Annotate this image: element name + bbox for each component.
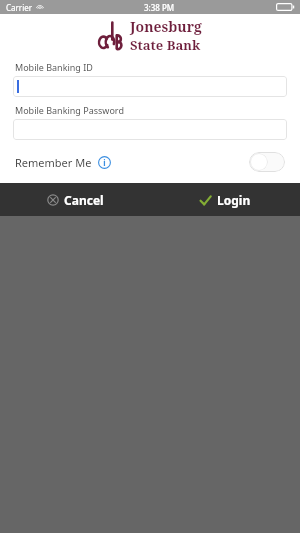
staticText: Mobile Banking Password [15, 104, 124, 116]
button[interactable]: Information about Remember Me [98, 156, 111, 169]
staticText: Carrier [6, 2, 33, 13]
staticText: Cancel [64, 192, 104, 208]
staticText: Mobile Banking ID [15, 61, 93, 73]
button[interactable]: Remember Me toggle, off [249, 152, 285, 172]
button[interactable]: Login [150, 183, 300, 216]
staticText: i [103, 157, 106, 168]
staticText: Remember Me [15, 155, 92, 170]
staticText: State Bank [130, 36, 201, 54]
staticText: Jonesburg [130, 17, 202, 36]
staticText: Login [217, 192, 251, 208]
button[interactable] [13, 119, 287, 140]
staticText: 3:38 PM [144, 2, 175, 13]
button[interactable] [13, 76, 287, 97]
button[interactable]: Cancel [0, 183, 150, 216]
